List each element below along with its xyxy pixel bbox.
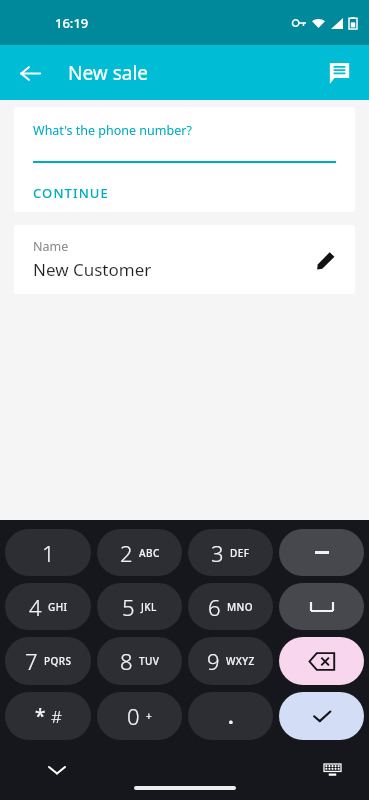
button[interactable]: Backspace (279, 637, 364, 685)
staticText: 8 (120, 646, 133, 676)
staticText: MNO (227, 600, 253, 614)
staticText: . (228, 703, 234, 730)
button[interactable]: 0 (97, 692, 182, 740)
button[interactable]: CONTINUE (25, 180, 117, 206)
button[interactable]: 7 (5, 637, 91, 685)
staticText: 5 (122, 592, 135, 622)
button[interactable]: Switch keyboard (315, 753, 349, 787)
staticText: JKL (141, 600, 157, 614)
staticText: + (146, 709, 153, 723)
staticText: New sale (68, 60, 149, 86)
button[interactable]: 5 (97, 583, 182, 630)
button[interactable]: Edit name (305, 240, 345, 280)
button[interactable]: Period (188, 692, 273, 740)
staticText: 16:19 (55, 14, 89, 32)
staticText: 9 (207, 646, 220, 676)
staticText: PQRS (44, 654, 72, 668)
button[interactable]: Star and pound (5, 692, 91, 740)
button[interactable]: 2 (97, 529, 182, 576)
staticText: ABC (139, 546, 160, 560)
button[interactable]: Enter (279, 692, 364, 740)
staticText: 7 (25, 646, 38, 676)
button[interactable]: Dash (279, 529, 364, 576)
button[interactable]: 3 (188, 529, 273, 576)
staticText: * (35, 703, 46, 729)
button[interactable]: 9 (188, 637, 273, 685)
button[interactable]: Back (9, 52, 51, 94)
staticText: DEF (230, 546, 250, 560)
staticText: 1 (42, 538, 55, 568)
staticText: CONTINUE (33, 184, 109, 202)
button[interactable]: 6 (188, 583, 273, 630)
staticText: 0 (127, 701, 140, 731)
staticText: New Customer (33, 258, 152, 281)
button[interactable]: Space (279, 583, 364, 630)
staticText: 2 (120, 538, 133, 568)
staticText: 3 (211, 538, 224, 568)
staticText: # (51, 705, 62, 728)
button[interactable]: 1 (5, 529, 91, 576)
staticText: Name (33, 238, 69, 255)
staticText: What's the phone number? (33, 122, 192, 139)
staticText: TUV (139, 654, 160, 668)
staticText: 4 (29, 592, 42, 622)
staticText: GHI (48, 600, 68, 614)
staticText: WXYZ (226, 654, 255, 668)
button[interactable]: 8 (97, 637, 182, 685)
button[interactable]: Hide keyboard (38, 751, 76, 789)
button[interactable]: Name (14, 225, 355, 294)
staticText: 6 (208, 592, 221, 622)
button[interactable]: 4 (5, 583, 91, 630)
button[interactable]: Messages (318, 52, 360, 94)
